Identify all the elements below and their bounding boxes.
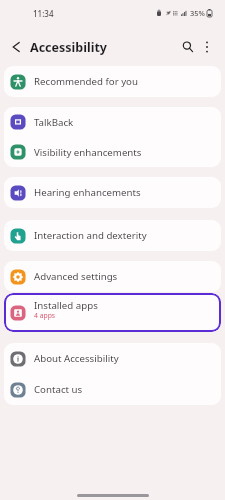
button[interactable]: Visibility enhancements <box>4 137 221 167</box>
button[interactable]: More options <box>195 35 219 59</box>
staticText: Recommended for you <box>34 75 138 88</box>
staticText: Installed apps <box>34 299 98 312</box>
button[interactable]: Recommended for you <box>4 66 221 97</box>
staticText: 35% <box>190 8 205 18</box>
staticText: Accessibility <box>30 39 107 56</box>
staticText: Interaction and dexterity <box>34 229 147 242</box>
button[interactable]: Contact us <box>4 374 221 405</box>
staticText: TalkBack <box>34 116 74 129</box>
button[interactable]: Installed apps <box>4 293 221 332</box>
staticText: Advanced settings <box>34 270 118 283</box>
button[interactable]: About Accessibility <box>4 343 221 374</box>
staticText: Visibility enhancements <box>34 146 142 159</box>
button[interactable]: TalkBack <box>4 107 221 137</box>
button[interactable]: Interaction and dexterity <box>4 220 221 251</box>
button[interactable]: Advanced settings <box>4 261 221 292</box>
staticText: 11:34 <box>33 8 54 19</box>
staticText: Hearing enhancements <box>34 186 141 199</box>
staticText: Contact us <box>34 383 83 396</box>
staticText: About Accessibility <box>34 352 119 365</box>
button[interactable]: Hearing enhancements <box>4 177 221 208</box>
staticText: 4 apps <box>34 311 56 320</box>
button[interactable]: Navigate up <box>3 34 29 60</box>
button[interactable]: Search <box>176 35 200 59</box>
